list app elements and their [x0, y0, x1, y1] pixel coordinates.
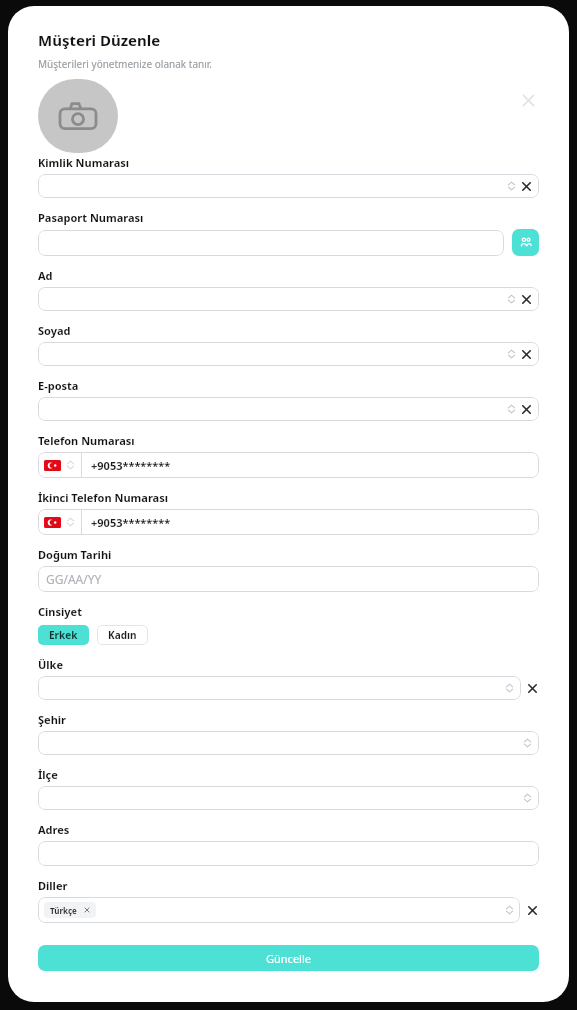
- button[interactable]: Temizle: [38, 397, 539, 421]
- button[interactable]: Kadın: [97, 625, 148, 645]
- staticText: Ülke: [38, 657, 63, 672]
- staticText: Diller: [38, 878, 68, 893]
- button[interactable]: [38, 786, 539, 810]
- button[interactable]: Temizle: [521, 349, 532, 360]
- button[interactable]: Temizle: [521, 181, 532, 192]
- staticText: İlçe: [38, 767, 58, 782]
- button[interactable]: Kişi seç: [512, 229, 539, 256]
- staticText: Kimlik Numarası: [38, 155, 130, 170]
- button[interactable]: Ülke kodu: [44, 516, 75, 528]
- button[interactable]: Temizle: [38, 342, 539, 366]
- staticText: Soyad: [38, 323, 71, 338]
- button[interactable]: Türkçe: [44, 902, 96, 918]
- staticText: Erkek: [49, 628, 78, 642]
- staticText: Pasaport Numarası: [38, 210, 144, 225]
- staticText: Ad: [38, 268, 53, 283]
- button[interactable]: [38, 676, 521, 700]
- button[interactable]: [38, 731, 539, 755]
- button[interactable]: Temizle: [38, 287, 539, 311]
- staticText: +9053********: [91, 515, 171, 530]
- staticText: Kadın: [108, 628, 137, 642]
- button[interactable]: Türkçe: [38, 897, 520, 923]
- staticText: Adres: [38, 822, 70, 837]
- button[interactable]: Kapat: [517, 89, 539, 111]
- button[interactable]: Erkek: [38, 625, 89, 645]
- button[interactable]: Fotoğraf ekle: [38, 79, 118, 153]
- staticText: Cinsiyet: [38, 604, 82, 619]
- button[interactable]: Temizle: [38, 174, 539, 198]
- button[interactable]: Güncelle: [38, 945, 539, 971]
- staticText: E-posta: [38, 378, 79, 393]
- button[interactable]: Ülke kodu: [44, 459, 75, 471]
- staticText: Müşteri Düzenle: [38, 30, 161, 50]
- button[interactable]: Ülke kodu: [38, 452, 539, 478]
- button[interactable]: Temizle: [525, 681, 539, 695]
- button[interactable]: Temizle: [521, 294, 532, 305]
- staticText: Türkçe: [50, 905, 77, 916]
- button[interactable]: Ülke kodu: [38, 509, 539, 535]
- button[interactable]: GG/AA/YY: [38, 566, 539, 592]
- button[interactable]: [38, 230, 504, 256]
- staticText: Güncelle: [266, 951, 311, 966]
- staticText: GG/AA/YY: [46, 571, 102, 587]
- button[interactable]: Temizle: [525, 903, 539, 917]
- button[interactable]: [38, 841, 539, 866]
- staticText: Doğum Tarihi: [38, 547, 112, 562]
- staticText: İkinci Telefon Numarası: [38, 490, 168, 505]
- staticText: +9053********: [91, 458, 171, 473]
- staticText: Telefon Numarası: [38, 433, 135, 448]
- staticText: Şehir: [38, 712, 66, 727]
- staticText: Müşterileri yönetmenize olanak tanır.: [38, 57, 212, 71]
- button[interactable]: Temizle: [521, 404, 532, 415]
